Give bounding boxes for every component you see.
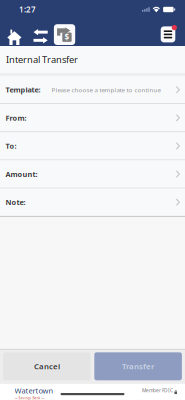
staticText: Template: <box>5 85 40 95</box>
button[interactable]: Cancel <box>3 352 91 380</box>
button[interactable]: Menu <box>159 19 176 46</box>
button[interactable]: Note: <box>0 188 185 216</box>
staticText: Amount: <box>5 169 37 179</box>
staticText: Transfer <box>122 361 154 371</box>
staticText: Please choose a template to continue <box>51 86 160 94</box>
staticText: $ <box>64 32 69 42</box>
staticText: Note: <box>5 197 25 207</box>
button[interactable]: Amount: <box>0 160 185 188</box>
staticText: Cancel <box>34 361 60 371</box>
button[interactable]: Template: <box>0 76 185 103</box>
staticText: Member FDIC <box>142 387 173 393</box>
staticText: Watertown <box>14 385 53 396</box>
staticText: Internal Transfer <box>6 53 78 66</box>
staticText: To: <box>5 141 16 151</box>
staticText: 1:27 <box>19 4 36 15</box>
button[interactable]: Transfer <box>94 352 182 380</box>
button[interactable]: Internal Transfer <box>54 19 75 46</box>
button[interactable]: To: <box>0 132 185 160</box>
staticText: From: <box>5 113 26 123</box>
button[interactable]: From: <box>0 104 185 132</box>
staticText: — Savings Bank — <box>14 396 44 400</box>
button[interactable]: Transfers <box>27 19 54 46</box>
button[interactable]: Home <box>1 19 27 46</box>
